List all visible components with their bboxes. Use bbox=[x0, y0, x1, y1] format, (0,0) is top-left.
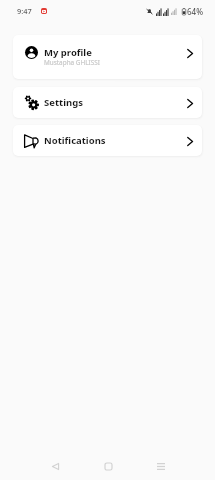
staticText: Settings bbox=[44, 96, 83, 109]
button[interactable]: My profile bbox=[13, 35, 202, 79]
staticText: 64% bbox=[187, 6, 203, 17]
button[interactable]: Settings bbox=[13, 87, 202, 118]
button[interactable]: Back bbox=[35, 448, 75, 480]
button[interactable]: Recent apps bbox=[141, 448, 181, 480]
staticText: My profile bbox=[44, 46, 92, 59]
button[interactable]: Notifications bbox=[13, 125, 202, 156]
staticText: 9:47 bbox=[17, 6, 32, 16]
staticText: Notifications bbox=[44, 134, 106, 147]
button[interactable]: Home bbox=[88, 448, 128, 480]
staticText: Mustapha GHLISSI bbox=[44, 58, 100, 67]
